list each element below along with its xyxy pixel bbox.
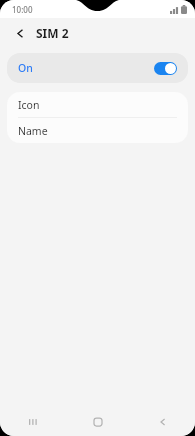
button[interactable]: Back xyxy=(130,408,195,436)
button[interactable]: Icon xyxy=(7,92,188,117)
staticText: Name xyxy=(18,124,48,138)
button[interactable]: Name xyxy=(7,118,188,143)
staticText: Icon xyxy=(18,98,40,112)
button[interactable]: Recent apps xyxy=(0,408,65,436)
staticText: 10:00 xyxy=(12,4,33,15)
staticText: SIM 2 xyxy=(36,25,69,41)
button[interactable]: Back xyxy=(11,24,29,42)
button[interactable]: Home xyxy=(65,408,130,436)
staticText: On xyxy=(18,61,33,75)
button[interactable]: On xyxy=(7,53,188,83)
